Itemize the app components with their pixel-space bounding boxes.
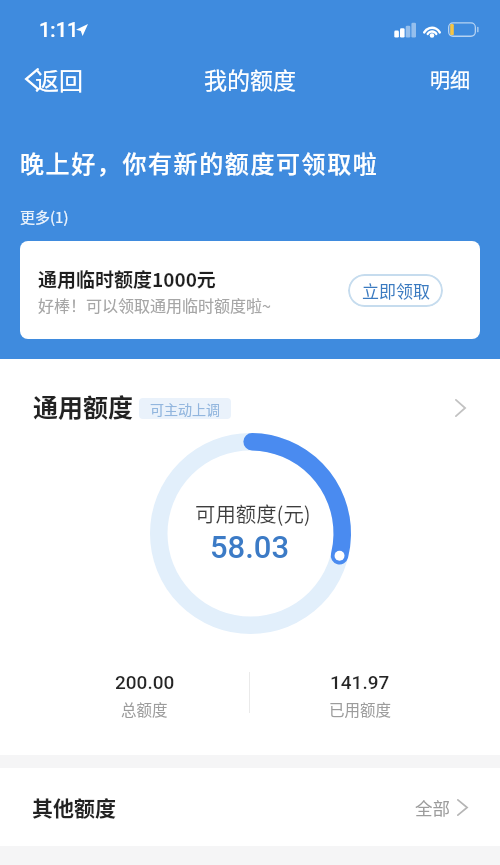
staticText: 200.00	[115, 671, 175, 693]
staticText: 其他额度	[32, 792, 116, 822]
other: More	[455, 399, 466, 417]
staticText: 可用额度(元)	[195, 498, 311, 528]
other: More	[457, 799, 468, 816]
button[interactable]: 返回	[14, 58, 94, 100]
button[interactable]: 立即领取	[348, 274, 443, 307]
staticText: 更多(1)	[20, 206, 69, 228]
staticText: 我的额度	[204, 62, 296, 95]
staticText: 返回	[35, 62, 83, 97]
staticText: 可主动上调	[150, 399, 220, 419]
staticText: 141.97	[330, 671, 390, 693]
staticText: 晚上好，你有新的额度可领取啦	[20, 145, 379, 180]
staticText: 58.03	[210, 529, 290, 565]
button[interactable]: 通用临时额度1000元	[20, 241, 480, 339]
staticText: 好棒！可以领取通用临时额度啦~	[38, 293, 271, 316]
staticText: 1:11	[39, 18, 79, 41]
staticText: 明细	[430, 65, 470, 94]
staticText: 已用额度	[329, 698, 392, 720]
button[interactable]: 其他额度	[0, 768, 500, 846]
button[interactable]: 通用额度	[0, 388, 500, 428]
staticText: 通用临时额度1000元	[38, 265, 216, 293]
staticText: 通用额度	[33, 388, 134, 424]
staticText: 总额度	[121, 698, 168, 720]
button[interactable]: 明细	[417, 58, 483, 100]
staticText: 全部	[415, 795, 450, 820]
staticText: 立即领取	[362, 278, 430, 303]
